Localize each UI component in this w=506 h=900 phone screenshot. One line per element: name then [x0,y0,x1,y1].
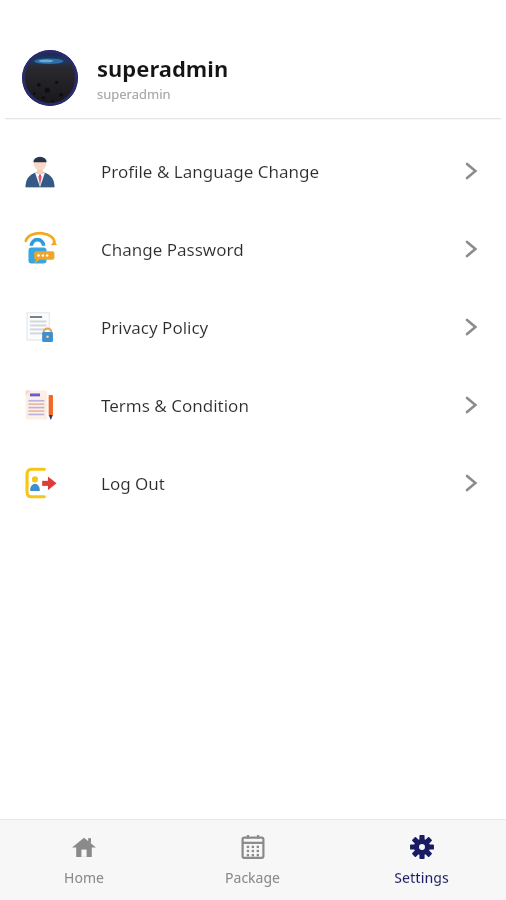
staticText: Profile & Language Change [101,160,319,183]
staticText: superadmin [97,53,229,83]
button[interactable]: Privacy Policy [0,288,506,366]
staticText: Terms & Condition [101,394,249,417]
staticText: Package [225,868,280,887]
button[interactable]: Home [0,820,168,900]
button[interactable]: Log Out [0,444,506,522]
staticText: Change Password [101,238,244,261]
staticText: superadmin [97,85,171,103]
staticText: Home [64,868,104,887]
staticText: Privacy Policy [101,316,209,339]
button[interactable]: Profile & Language Change [0,132,506,210]
staticText: Log Out [101,472,165,495]
button[interactable]: Package [168,820,337,900]
button[interactable]: Terms & Condition [0,366,506,444]
button[interactable]: superadmin [5,38,501,118]
staticText: Settings [394,868,449,887]
button[interactable]: Change Password [0,210,506,288]
button[interactable]: Settings [337,820,506,900]
